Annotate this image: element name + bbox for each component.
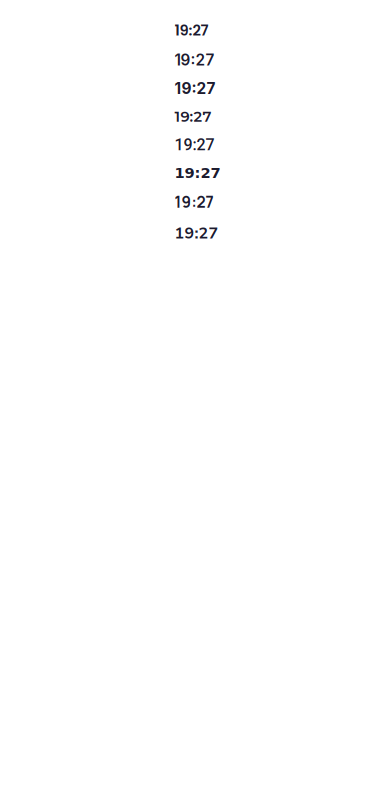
staticText: 19:27 <box>174 135 214 154</box>
staticText: 19:27 <box>174 108 211 125</box>
staticText: 19:27 <box>174 222 218 244</box>
staticText: 19:27 <box>174 191 213 212</box>
staticText: 19:27 <box>174 164 220 181</box>
staticText: 19:27 <box>174 50 214 69</box>
staticText: 19:27 <box>174 79 215 98</box>
staticText: 19:27 <box>174 20 208 40</box>
